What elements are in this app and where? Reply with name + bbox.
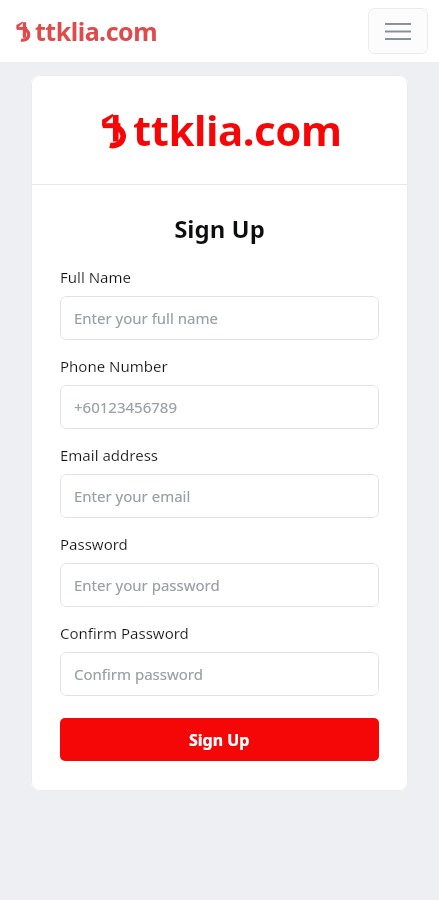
button[interactable]: Enter your email: [60, 474, 379, 518]
staticText: ttklia.com: [133, 101, 342, 158]
staticText: ttklia.com: [35, 14, 158, 48]
staticText: Enter your password: [74, 575, 220, 595]
button[interactable]: Sign Up: [60, 718, 379, 761]
staticText: Sign Up: [189, 729, 250, 751]
staticText: Phone Number: [60, 356, 168, 376]
button[interactable]: ttklia.com: [14, 14, 158, 48]
button[interactable]: Enter your password: [60, 563, 379, 607]
staticText: Sign Up: [60, 212, 379, 245]
button[interactable]: +60123456789: [60, 385, 379, 429]
button[interactable]: Menu: [368, 8, 428, 54]
staticText: Confirm password: [74, 664, 203, 684]
staticText: +60123456789: [74, 397, 177, 417]
button[interactable]: Enter your full name: [60, 296, 379, 340]
staticText: Enter your email: [74, 486, 191, 506]
staticText: Email address: [60, 445, 159, 465]
staticText: Password: [60, 534, 128, 554]
staticText: Enter your full name: [74, 308, 218, 328]
staticText: Full Name: [60, 267, 131, 287]
button[interactable]: Confirm password: [60, 652, 379, 696]
staticText: Confirm Password: [60, 623, 189, 643]
